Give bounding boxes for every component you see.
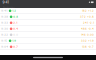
staticText: 0.0 [13, 33, 18, 36]
button[interactable]: 9:38 [0, 14, 96, 20]
button[interactable]: 9:22 [0, 32, 96, 38]
staticText: 372 [80, 15, 86, 18]
staticText: 0.4 [13, 27, 18, 30]
staticText: 138 [82, 45, 87, 48]
staticText: 9:04 [1, 45, 8, 48]
staticText: 9:41 [1, 9, 7, 12]
staticText: 0.7 [13, 45, 18, 48]
button[interactable]: 9:15 [0, 38, 96, 44]
staticText: 332 [81, 39, 87, 42]
button[interactable]: 9:04 [0, 44, 96, 50]
staticText: 1.9 [12, 39, 16, 42]
button[interactable]: 9:30 [0, 26, 96, 32]
staticText: 486 [81, 27, 87, 30]
button[interactable]: 9:41 [0, 8, 96, 14]
staticText: 241 [83, 21, 88, 24]
staticText: 146 [81, 33, 86, 36]
staticText: 2.1 [13, 21, 17, 24]
staticText: -2.1 [89, 21, 94, 24]
staticText: 0.8 [13, 15, 18, 18]
staticText: 9:38 [1, 15, 8, 18]
staticText: +1.2 [88, 9, 94, 12]
staticText: 9:30 [1, 27, 8, 30]
button[interactable]: 9:33 [0, 20, 96, 26]
staticText: -0.4 [88, 27, 94, 30]
staticText: 9:33 [1, 21, 8, 24]
staticText: 9:41 [2, 0, 8, 4]
staticText: 9:15 [1, 39, 7, 42]
staticText: +1.9 [88, 39, 94, 42]
staticText: 1.2 [12, 9, 16, 12]
staticText: 9:22 [1, 33, 8, 36]
staticText: Activity [2, 6, 14, 10]
staticText: 182 [82, 9, 87, 12]
staticText: +0.8 [87, 15, 94, 18]
staticText: 0.00 [87, 33, 94, 36]
staticText: -0.7 [88, 45, 94, 48]
